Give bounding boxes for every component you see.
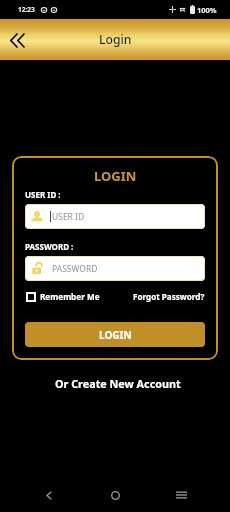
button[interactable]: Back	[0, 23, 34, 57]
staticText: LOGIN	[99, 328, 132, 342]
staticText: LOGIN	[94, 167, 137, 183]
button[interactable]: Forgot Password?	[133, 291, 205, 302]
staticText: 100%	[197, 5, 217, 15]
staticText: 12:23	[18, 5, 35, 14]
button[interactable]: LOGIN	[25, 322, 205, 347]
staticText: PASSWORD	[52, 263, 98, 275]
staticText: USER ID	[52, 211, 85, 223]
staticText: PASSWORD :	[25, 241, 74, 250]
staticText: USER ID :	[25, 189, 61, 198]
staticText: Remember Me	[40, 291, 100, 302]
button[interactable]: Back	[32, 478, 66, 512]
button[interactable]: Recent apps	[164, 478, 198, 512]
staticText: Login	[99, 31, 132, 48]
button[interactable]: PASSWORD	[25, 256, 205, 281]
button[interactable]: Or Create New Account	[55, 376, 181, 391]
button[interactable]: USER ID	[25, 204, 205, 229]
button[interactable]: Remember Me	[25, 291, 100, 302]
button[interactable]: Home	[98, 478, 132, 512]
